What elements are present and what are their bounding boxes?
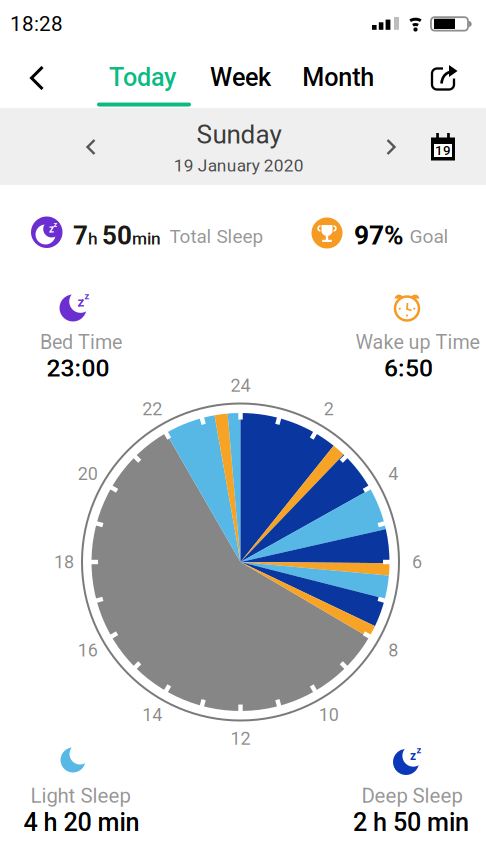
staticText: 18: [54, 551, 74, 573]
button[interactable]: Month: [302, 62, 374, 92]
staticText: 2: [324, 399, 334, 420]
button[interactable]: Week: [210, 62, 271, 92]
staticText: 6:50: [384, 353, 433, 382]
button[interactable]: [76, 132, 106, 162]
staticText: 97%: [354, 220, 404, 251]
staticText: z: [53, 220, 57, 229]
staticText: 4 h 20 min: [23, 808, 139, 837]
staticText: 6: [412, 551, 422, 573]
staticText: 4: [388, 463, 398, 484]
staticText: z: [77, 294, 84, 310]
staticText: 7h 50min: [73, 221, 161, 250]
staticText: 22: [142, 399, 162, 420]
staticText: 16: [78, 640, 98, 661]
button[interactable]: 19: [423, 128, 463, 168]
staticText: z: [84, 290, 89, 301]
staticText: Deep Sleep: [361, 784, 462, 808]
staticText: 19: [435, 143, 451, 158]
staticText: 14: [142, 704, 162, 725]
staticText: z: [416, 744, 421, 755]
staticText: 18:28: [10, 12, 63, 36]
staticText: Month: [302, 62, 374, 92]
button[interactable]: [376, 132, 406, 162]
staticText: 2 h 50 min: [353, 808, 469, 837]
staticText: 8: [388, 640, 398, 661]
staticText: 24: [230, 375, 250, 396]
staticText: 23:00: [46, 353, 109, 382]
staticText: Today: [109, 62, 176, 92]
staticText: Total Sleep: [169, 225, 263, 248]
staticText: 20: [78, 463, 98, 484]
staticText: z: [49, 223, 54, 235]
button[interactable]: [15, 56, 59, 100]
staticText: 19 January 2020: [174, 155, 304, 176]
staticText: Bed Time: [40, 331, 122, 354]
button[interactable]: Today: [109, 62, 176, 92]
staticText: z: [410, 749, 416, 763]
staticText: Wake up Time: [355, 331, 479, 354]
staticText: 12: [230, 728, 250, 749]
staticText: Goal: [409, 225, 448, 248]
staticText: Week: [210, 62, 271, 92]
staticText: Sunday: [196, 119, 281, 150]
button[interactable]: [423, 58, 467, 102]
staticText: 10: [319, 704, 339, 725]
staticText: Light Sleep: [31, 784, 131, 808]
